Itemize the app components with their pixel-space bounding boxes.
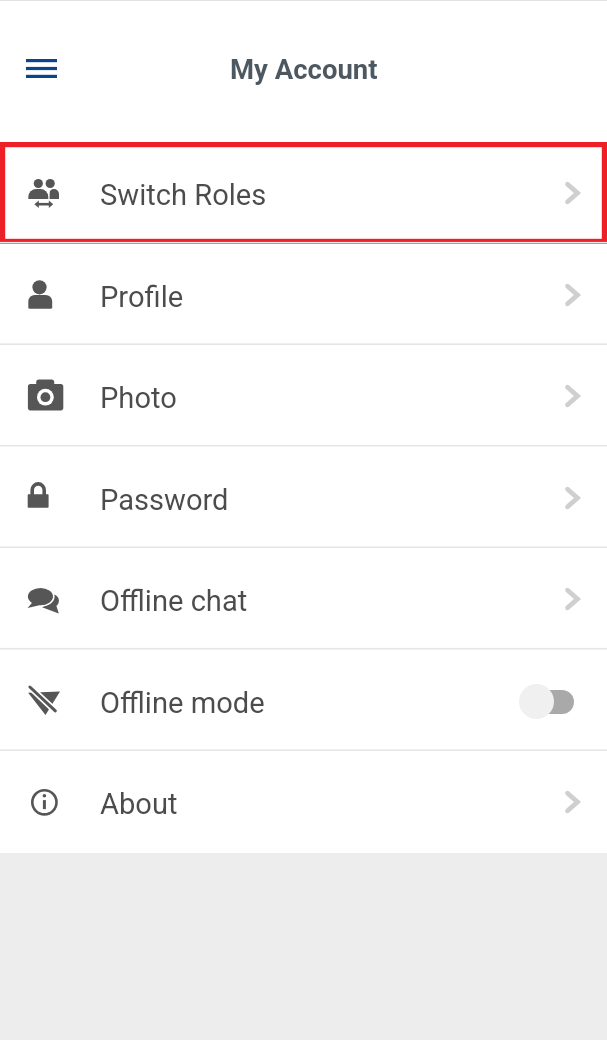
button[interactable]: Offline mode	[0, 650, 607, 752]
button[interactable]: Password	[0, 447, 607, 549]
button[interactable]: Photo	[0, 345, 607, 447]
staticText: Password	[100, 483, 229, 517]
button[interactable]: Offline mode toggle	[519, 684, 574, 719]
staticText: Photo	[100, 381, 177, 415]
staticText: My Account	[230, 53, 378, 85]
staticText: Offline chat	[100, 584, 248, 618]
button[interactable]: Open navigation menu	[8, 35, 74, 101]
button[interactable]: Switch Roles	[0, 142, 607, 244]
button[interactable]: Profile	[0, 244, 607, 346]
button[interactable]: About	[0, 751, 607, 853]
staticText: Profile	[100, 280, 184, 314]
staticText: About	[100, 787, 178, 821]
staticText: Offline mode	[100, 686, 265, 720]
staticText: Switch Roles	[100, 178, 267, 212]
button[interactable]: Offline chat	[0, 548, 607, 650]
